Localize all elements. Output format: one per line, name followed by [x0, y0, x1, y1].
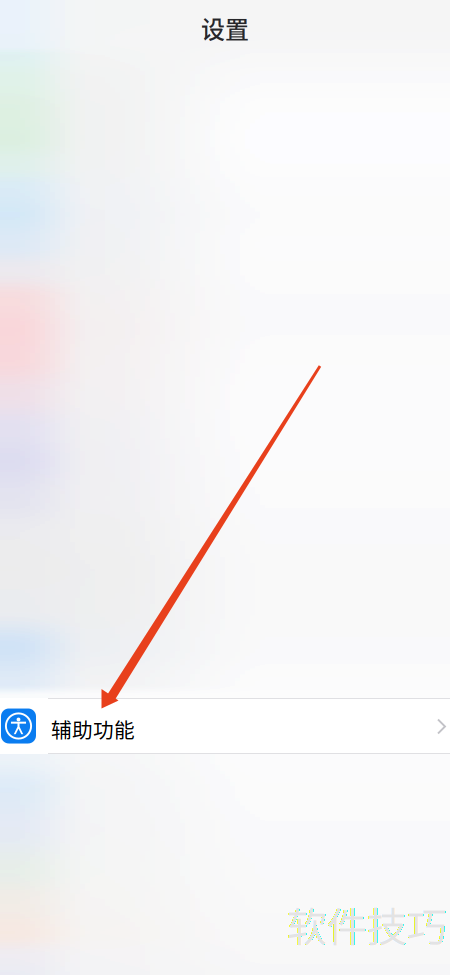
staticText: 设置 [201, 11, 249, 45]
button[interactable]: 辅助功能 [0, 698, 450, 754]
staticText: 辅助功能 [51, 714, 135, 744]
staticText: 软件技巧 [287, 895, 447, 953]
